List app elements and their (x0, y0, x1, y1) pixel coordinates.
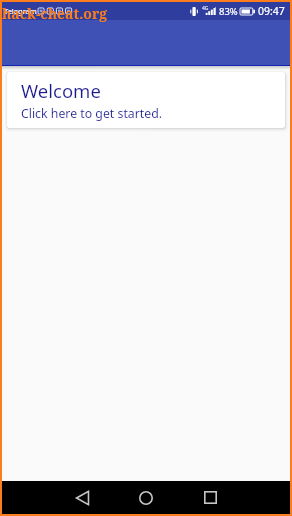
staticText: hack-cheat.org (2, 4, 108, 23)
staticText: Welcome (21, 78, 101, 103)
button[interactable]: Recent apps (186, 481, 234, 514)
button[interactable]: Home (122, 481, 170, 514)
staticText: 4G (202, 5, 209, 12)
button[interactable]: Welcome (7, 72, 285, 128)
staticText: 83% (219, 5, 238, 18)
staticText: Click here to get started. (21, 105, 163, 122)
button[interactable]: Back (58, 481, 106, 514)
staticText: Telegram (4, 6, 37, 16)
staticText: 09:47 (258, 4, 285, 18)
